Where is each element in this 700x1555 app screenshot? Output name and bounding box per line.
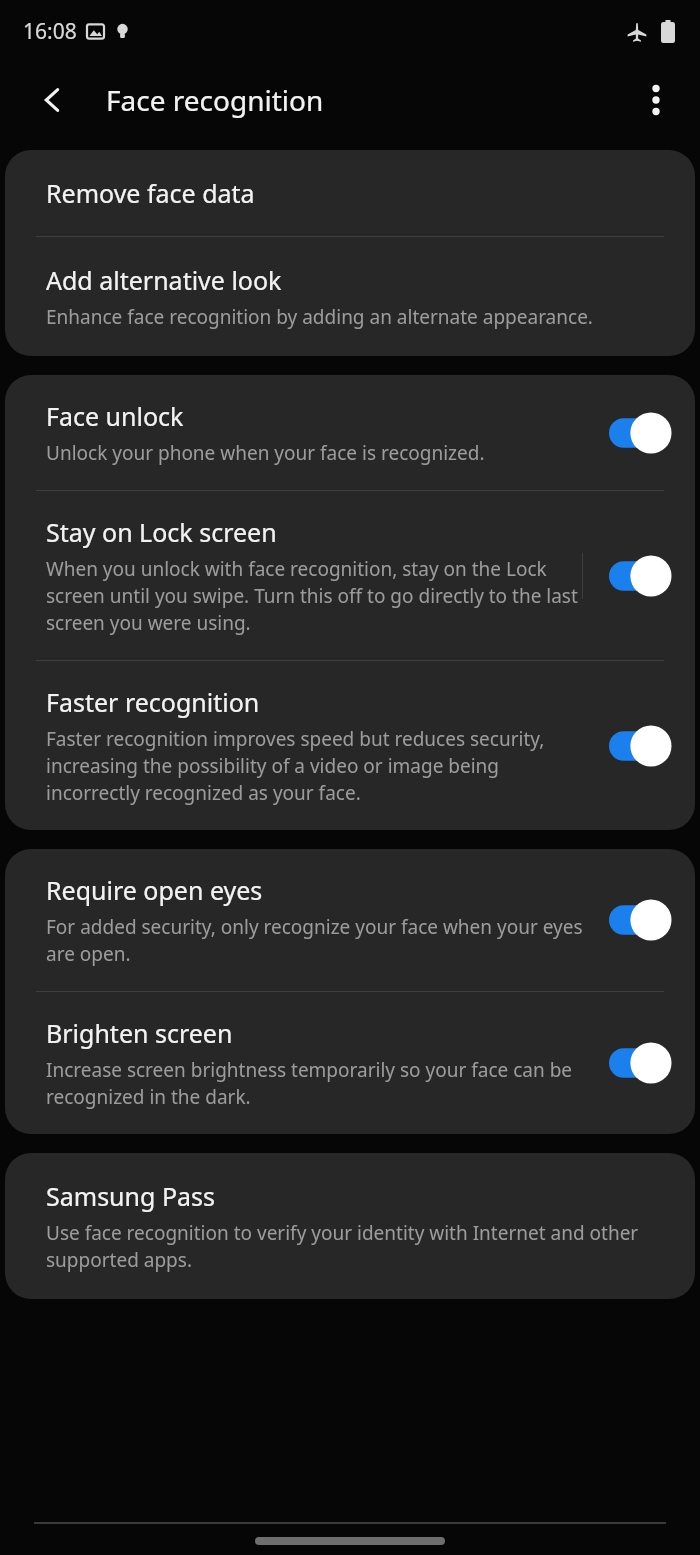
button[interactable]: Require open eyes [5, 849, 695, 991]
button[interactable]: Stay on Lock screen [5, 491, 695, 660]
button[interactable]: More options [632, 76, 680, 124]
button[interactable]: Toggle, on [609, 555, 675, 597]
button[interactable]: Navigate up [30, 77, 76, 123]
button[interactable]: Toggle, on [609, 899, 675, 941]
staticText: Faster recognition improves speed but re… [46, 726, 589, 806]
staticText: Faster recognition [46, 685, 260, 719]
staticText: Samsung Pass [46, 1179, 215, 1213]
staticText: Enhance face recognition by adding an al… [46, 304, 593, 330]
staticText: Stay on Lock screen [46, 515, 277, 549]
staticText: Face recognition [106, 81, 324, 119]
staticText: Use face recognition to verify your iden… [46, 1220, 655, 1273]
staticText: Remove face data [46, 176, 255, 210]
staticText: Increase screen brightness temporarily s… [46, 1057, 589, 1110]
staticText: Require open eyes [46, 873, 263, 907]
staticText: Unlock your phone when your face is reco… [46, 440, 485, 466]
button[interactable]: Face unlock [5, 375, 695, 490]
button[interactable]: Toggle, on [609, 725, 675, 767]
staticText: When you unlock with face recognition, s… [46, 556, 582, 636]
staticText: Brighten screen [46, 1016, 233, 1050]
button[interactable]: Remove face data [5, 150, 695, 236]
button[interactable]: Toggle, on [609, 412, 675, 454]
staticText: 16:08 [23, 17, 77, 46]
staticText: For added security, only recognize your … [46, 914, 589, 967]
button[interactable]: Toggle, on [609, 1042, 675, 1084]
button[interactable]: Add alternative look [5, 237, 695, 356]
button[interactable]: Brighten screen [5, 992, 695, 1134]
staticText: Face unlock [46, 399, 184, 433]
staticText: Add alternative look [46, 263, 282, 297]
button[interactable]: Faster recognition [5, 661, 695, 830]
button[interactable]: Samsung Pass [5, 1153, 695, 1299]
